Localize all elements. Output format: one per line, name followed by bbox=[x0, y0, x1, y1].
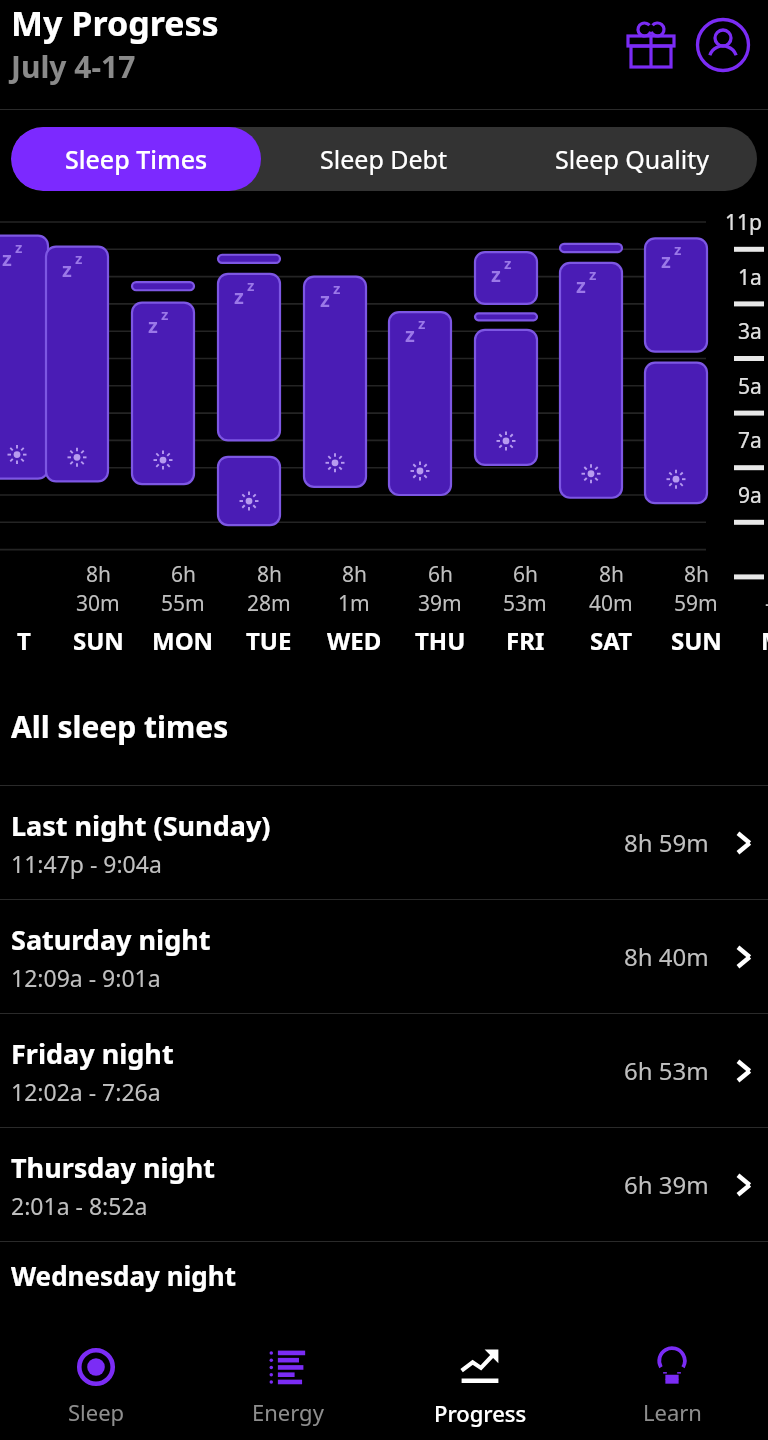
staticText: 53m bbox=[503, 589, 547, 618]
staticText: Progress bbox=[434, 1398, 527, 1428]
staticText: T bbox=[17, 624, 31, 657]
staticText: z bbox=[148, 312, 158, 339]
staticText: Thursday night bbox=[11, 1149, 215, 1186]
staticText: MON bbox=[152, 624, 214, 657]
staticText: 6h 39m bbox=[624, 1168, 709, 1201]
button[interactable]: Friday night bbox=[0, 1014, 768, 1127]
button[interactable]: Sleep bbox=[0, 1332, 192, 1440]
staticText: Sleep Quality bbox=[555, 142, 709, 176]
staticText: z bbox=[504, 253, 512, 273]
staticText: z bbox=[418, 313, 426, 333]
button[interactable]: Energy bbox=[192, 1332, 384, 1440]
staticText: WED bbox=[327, 624, 382, 657]
button[interactable]: Last night (Sunday) bbox=[0, 786, 768, 899]
button[interactable]: Rewards bbox=[620, 14, 682, 76]
staticText: --m bbox=[765, 589, 768, 618]
staticText: z bbox=[15, 237, 23, 257]
staticText: 8h bbox=[684, 560, 709, 589]
staticText: 55m bbox=[161, 589, 205, 618]
staticText: Last night (Sunday) bbox=[11, 807, 271, 844]
staticText: z bbox=[161, 304, 169, 324]
staticText: 8h bbox=[86, 560, 111, 589]
button[interactable]: Progress bbox=[384, 1332, 576, 1440]
staticText: FRI bbox=[506, 624, 545, 657]
staticText: 1m bbox=[338, 589, 370, 618]
staticText: Sleep bbox=[68, 1397, 125, 1427]
staticText: z bbox=[405, 321, 415, 348]
staticText: THU bbox=[415, 624, 466, 657]
staticText: Saturday night bbox=[11, 921, 211, 958]
staticText: 7a bbox=[738, 426, 762, 455]
staticText: Sleep Times bbox=[65, 142, 208, 176]
staticText: 8h bbox=[257, 560, 282, 589]
staticText: 28m bbox=[247, 589, 291, 618]
staticText: 6h bbox=[428, 560, 453, 589]
button[interactable]: Sleep Debt bbox=[261, 127, 507, 191]
staticText: z bbox=[589, 264, 597, 284]
staticText: 3a bbox=[738, 317, 762, 346]
button[interactable]: Saturday night bbox=[0, 900, 768, 1013]
staticText: 6h bbox=[513, 560, 538, 589]
staticText: 8h 40m bbox=[624, 940, 709, 973]
staticText: z bbox=[661, 247, 671, 274]
staticText: 59m bbox=[674, 589, 718, 618]
button[interactable]: Thursday night bbox=[0, 1128, 768, 1241]
staticText: 2:01a - 8:52a bbox=[11, 1190, 148, 1221]
staticText: z bbox=[333, 278, 341, 298]
staticText: 8h bbox=[599, 560, 624, 589]
staticText: 11p bbox=[725, 208, 762, 237]
staticText: SAT bbox=[590, 624, 632, 657]
button[interactable]: Learn bbox=[576, 1332, 768, 1440]
staticText: 6h bbox=[171, 560, 196, 589]
staticText: z bbox=[75, 248, 83, 268]
button[interactable]: Wednesday night bbox=[0, 1242, 768, 1292]
staticText: z bbox=[2, 245, 12, 272]
button[interactable]: Account bbox=[692, 14, 754, 76]
staticText: 8h bbox=[342, 560, 367, 589]
staticText: 6h 53m bbox=[624, 1054, 709, 1087]
button[interactable]: Sleep Times bbox=[11, 127, 261, 191]
staticText: MO bbox=[761, 624, 768, 657]
staticText: 30m bbox=[76, 589, 120, 618]
staticText: z bbox=[491, 261, 501, 288]
staticText: Energy bbox=[252, 1397, 324, 1427]
staticText: z bbox=[320, 286, 330, 313]
staticText: July 4-17 bbox=[11, 46, 136, 87]
staticText: Friday night bbox=[11, 1035, 174, 1072]
staticText: Sleep Debt bbox=[320, 142, 448, 176]
staticText: 9a bbox=[738, 481, 762, 510]
staticText: TUE bbox=[246, 624, 292, 657]
staticText: All sleep times bbox=[11, 706, 229, 747]
staticText: 12:09a - 9:01a bbox=[11, 962, 161, 993]
staticText: 1a bbox=[738, 263, 762, 292]
staticText: 40m bbox=[589, 589, 633, 618]
staticText: z bbox=[576, 272, 586, 299]
staticText: 8h 59m bbox=[624, 826, 709, 859]
staticText: z bbox=[234, 283, 244, 310]
staticText: z bbox=[674, 239, 682, 259]
staticText: 5a bbox=[738, 372, 762, 401]
staticText: 39m bbox=[418, 589, 462, 618]
staticText: SUN bbox=[73, 624, 124, 657]
staticText: 11:47p - 9:04a bbox=[11, 848, 162, 879]
staticText: Wednesday night bbox=[11, 1258, 236, 1292]
staticText: 12:02a - 7:26a bbox=[11, 1076, 161, 1107]
staticText: z bbox=[62, 256, 72, 283]
button[interactable]: Sleep Quality bbox=[507, 127, 757, 191]
staticText: My Progress bbox=[11, 0, 219, 46]
staticText: Learn bbox=[643, 1397, 702, 1427]
staticText: SUN bbox=[671, 624, 722, 657]
staticText: z bbox=[247, 275, 255, 295]
